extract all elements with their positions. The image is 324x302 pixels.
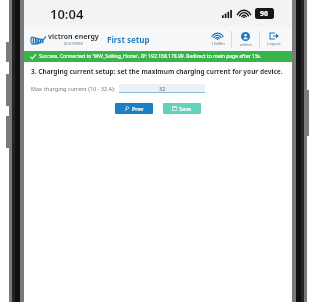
staticText: -15dBm — [210, 41, 225, 46]
button[interactable]: Save — [163, 103, 201, 114]
staticText: 3. Charging current setup: set the maxim… — [31, 67, 283, 76]
staticText: 10:04 — [50, 5, 84, 23]
button[interactable]: Wi-Fi signal — [204, 27, 231, 51]
staticText: First setup — [107, 34, 150, 45]
button[interactable]: Prev — [115, 103, 153, 114]
button[interactable]: Account — [232, 27, 259, 51]
staticText: Success. Connected to 'MW_Sailing_Home',… — [39, 53, 262, 60]
staticText: BLUE POWER — [64, 42, 83, 46]
button[interactable]: Logout — [260, 27, 287, 51]
staticText: admin — [240, 42, 252, 47]
staticText: Prev — [132, 105, 144, 112]
staticText: victron energy — [48, 32, 99, 42]
staticText: 96 — [260, 9, 269, 19]
staticText: Logout — [267, 41, 281, 46]
staticText: Max charging current (10 - 32 A): — [31, 85, 116, 92]
staticText: 32 — [159, 85, 166, 92]
staticText: Save — [179, 105, 192, 112]
button[interactable]: 32 — [119, 84, 205, 93]
